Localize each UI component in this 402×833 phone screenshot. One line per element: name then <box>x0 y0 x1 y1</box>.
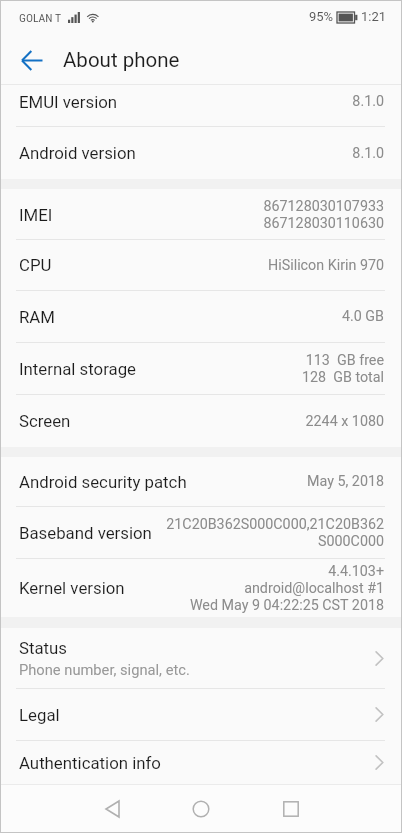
staticText: RAM <box>19 307 55 327</box>
staticText: 21C20B362S000C000,21C20B362 <box>166 516 384 533</box>
staticText: Authentication info <box>19 753 161 773</box>
staticText: About phone <box>63 48 180 72</box>
staticText: May 5, 2018 <box>307 473 384 490</box>
staticText: 4.4.103+ <box>328 563 384 580</box>
button[interactable]: Kernel version <box>1 559 401 617</box>
button[interactable]: Back <box>1 36 63 84</box>
staticText: 4.0 GB <box>341 308 384 325</box>
staticText: Wed May 9 04:22:25 CST 2018 <box>189 597 384 614</box>
button[interactable]: Recents <box>262 785 320 832</box>
staticText: 113 GB free <box>305 352 384 369</box>
staticText: HiSilicon Kirin 970 <box>268 257 384 274</box>
staticText: Kernel version <box>19 578 125 598</box>
staticText: Baseband version <box>19 523 152 543</box>
button[interactable]: RAM <box>1 291 401 342</box>
staticText: Screen <box>19 411 71 431</box>
button[interactable]: Home <box>172 785 230 832</box>
staticText: 95% <box>309 9 334 24</box>
button[interactable]: Back <box>83 785 141 832</box>
button[interactable]: Screen <box>1 395 401 447</box>
staticText: android@localhost #1 <box>244 580 384 597</box>
button[interactable]: Legal <box>1 689 401 740</box>
staticText: Android version <box>19 143 136 163</box>
button[interactable]: CPU <box>1 240 401 290</box>
button[interactable]: EMUI version <box>1 81 401 122</box>
staticText: GOLAN T <box>19 11 62 25</box>
staticText: 867128030107933 <box>263 198 384 215</box>
staticText: Legal <box>19 705 60 725</box>
staticText: 8.1.0 <box>352 145 384 162</box>
staticText: Internal storage <box>19 359 137 379</box>
staticText: Status <box>19 638 68 658</box>
staticText: EMUI version <box>19 92 118 112</box>
staticText: 867128030110630 <box>263 215 384 232</box>
staticText: 1:21 <box>361 9 387 24</box>
button[interactable]: Status <box>1 628 401 688</box>
staticText: 8.1.0 <box>352 93 384 110</box>
staticText: S000C000 <box>317 533 384 550</box>
staticText: Phone number, signal, etc. <box>19 661 190 678</box>
staticText: CPU <box>19 255 52 275</box>
staticText: IMEI <box>19 205 53 225</box>
button[interactable]: Android version <box>1 127 401 179</box>
staticText: Android security patch <box>19 472 187 492</box>
staticText: 128 GB total <box>301 369 384 386</box>
button[interactable]: Android security patch <box>1 457 401 506</box>
staticText: 2244 x 1080 <box>305 413 384 430</box>
button[interactable]: IMEI <box>1 190 401 240</box>
button[interactable]: Internal storage <box>1 343 401 394</box>
button[interactable]: Baseband version <box>1 507 401 558</box>
button[interactable]: Authentication info <box>1 741 401 784</box>
